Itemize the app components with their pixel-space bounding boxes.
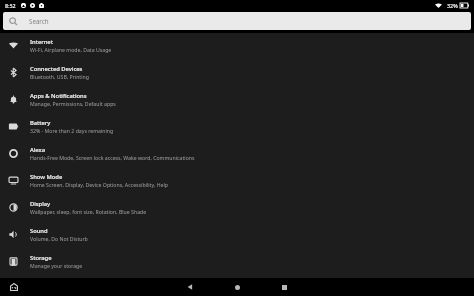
button[interactable]: Home app (7, 280, 21, 294)
staticText: 8:52 (5, 2, 16, 9)
staticText: Battery (30, 119, 51, 127)
staticText: Wi-Fi, Airplane mode, Data Usage (30, 46, 112, 53)
staticText: Internet (30, 38, 53, 46)
button[interactable]: Home (226, 278, 248, 296)
button[interactable]: Storage (0, 248, 474, 275)
staticText: Wallpaper, sleep, font size, Rotation, B… (30, 208, 147, 215)
staticText: Connected Devices (30, 65, 83, 73)
staticText: Bluetooth, USB, Printing (30, 73, 89, 80)
button[interactable]: Sound (0, 221, 474, 248)
staticText: Sound (30, 227, 48, 235)
staticText: Storage (30, 254, 52, 262)
staticText: Manage your storage (30, 262, 83, 269)
button[interactable]: Alexa (0, 140, 474, 167)
button[interactable]: Connected Devices (0, 59, 474, 86)
button[interactable]: Battery (0, 113, 474, 140)
staticText: 32% (447, 2, 458, 9)
staticText: 32% - More than 2 days remaining (30, 127, 114, 134)
staticText: Hands-Free Mode, Screen lock access, Wak… (30, 154, 195, 161)
staticText: Volume, Do Not Disturb (30, 235, 88, 242)
button[interactable]: Show Mode (0, 167, 474, 194)
button[interactable]: Internet (0, 32, 474, 59)
button[interactable]: Recent apps (273, 278, 295, 296)
staticText: Manage, Permissions, Default apps (30, 100, 116, 107)
staticText: Apps & Notifications (30, 92, 87, 100)
staticText: Display (30, 200, 51, 208)
button[interactable]: Apps & Notifications (0, 86, 474, 113)
button[interactable]: Back (179, 278, 201, 296)
button[interactable]: Search (3, 12, 471, 30)
staticText: Home Screen, Display, Device Options, Ac… (30, 181, 168, 188)
staticText: Alexa (30, 146, 46, 154)
staticText: Show Mode (30, 173, 63, 181)
staticText: Search (29, 17, 49, 25)
button[interactable]: Display (0, 194, 474, 221)
